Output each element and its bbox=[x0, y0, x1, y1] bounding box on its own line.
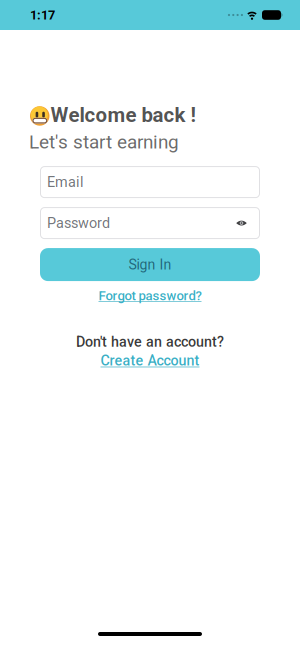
staticText: Welcome back ! bbox=[50, 103, 196, 127]
staticText: Password bbox=[47, 215, 110, 232]
button[interactable]: Show password bbox=[236, 218, 247, 229]
staticText: Forgot password? bbox=[98, 288, 201, 304]
staticText: Don't have an account? bbox=[76, 334, 224, 350]
button[interactable]: Sign In bbox=[40, 248, 260, 281]
staticText: Let's start earning bbox=[29, 131, 179, 153]
staticText: 1:17 bbox=[30, 7, 55, 22]
staticText: Create Account bbox=[100, 352, 199, 369]
staticText: Email bbox=[47, 174, 84, 191]
staticText: Sign In bbox=[128, 256, 171, 273]
button[interactable]: Forgot password? bbox=[98, 288, 201, 304]
button[interactable]: Create Account bbox=[100, 352, 199, 369]
